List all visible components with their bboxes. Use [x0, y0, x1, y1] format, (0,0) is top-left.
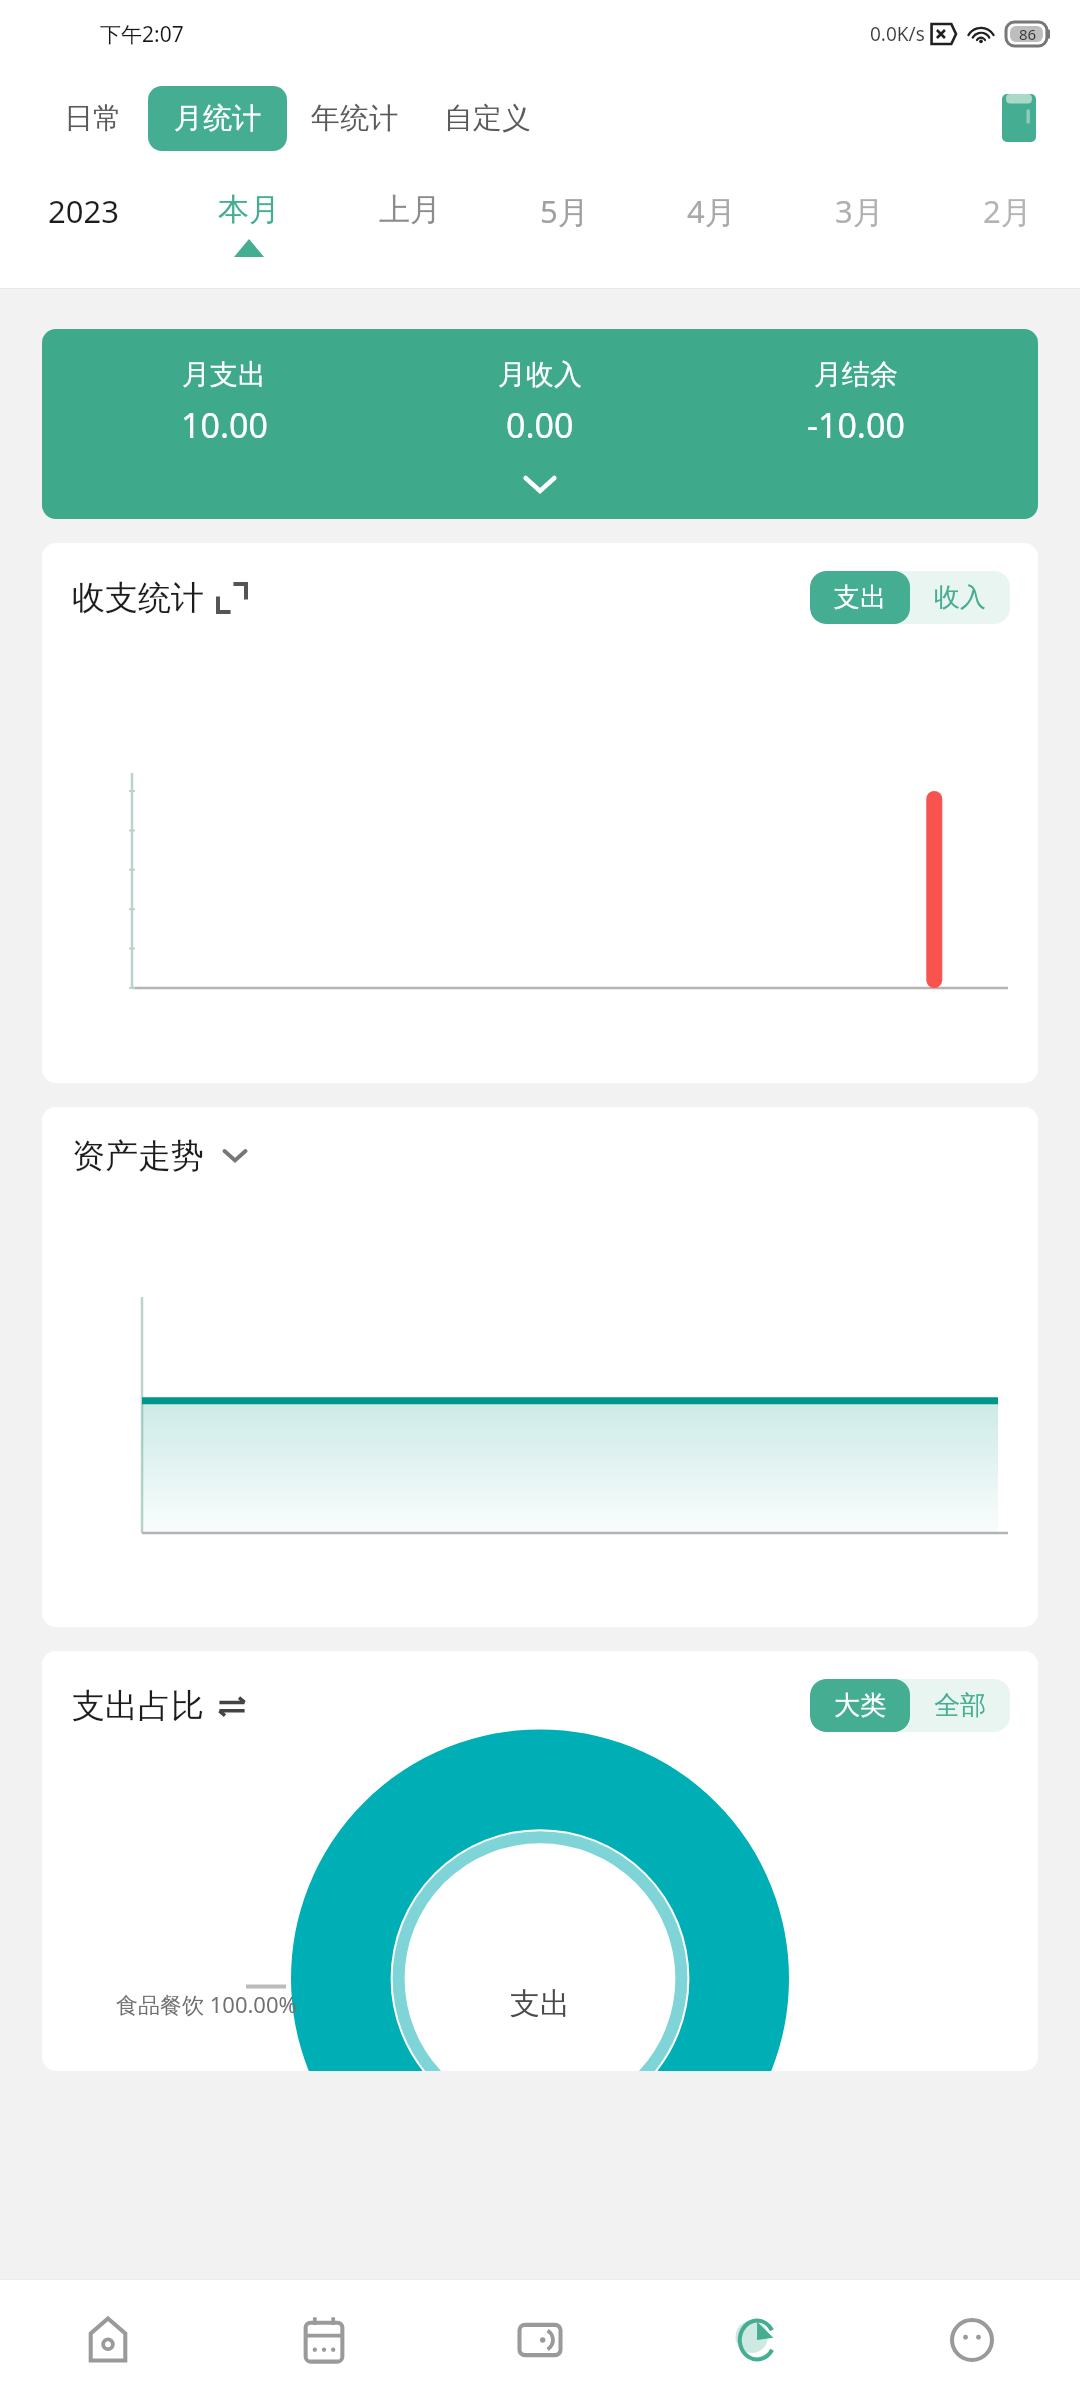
staticText: 资产走势 [72, 1135, 204, 1177]
staticText: 大类 [834, 1689, 886, 1722]
staticText: 下午2:07 [100, 20, 184, 49]
staticText: 上月 [379, 190, 441, 229]
button[interactable]: 3月 [827, 168, 892, 242]
staticText: 收入 [934, 581, 986, 614]
button[interactable]: Swap [218, 1694, 246, 1718]
staticText: 0.0K/s [870, 21, 925, 47]
staticText: 本月 [218, 190, 280, 229]
staticText: 支出占比 [72, 1685, 204, 1727]
button[interactable]: 2月 [975, 168, 1040, 242]
button[interactable]: 支出 [810, 571, 910, 624]
staticText: 全部 [934, 1689, 986, 1722]
staticText: 支出 [834, 581, 886, 614]
staticText: 2023 [48, 190, 119, 232]
staticText: 月结余 [814, 357, 898, 392]
button[interactable]: 4月 [679, 168, 744, 242]
staticText: 86 [1019, 24, 1037, 44]
button[interactable]: 日常 [50, 88, 136, 149]
staticText: -10.00 [807, 402, 905, 448]
button[interactable]: Wallet [432, 2280, 648, 2400]
button[interactable]: 月支出 [42, 329, 1038, 519]
button[interactable]: Statistics [648, 2280, 864, 2400]
button[interactable]: More [220, 1146, 250, 1166]
button[interactable]: 月统计 [148, 86, 287, 151]
button[interactable]: 上月 [371, 168, 449, 239]
button[interactable]: 5月 [532, 168, 597, 242]
staticText: 10.00 [181, 402, 268, 448]
staticText: 收支统计 [72, 577, 204, 619]
button[interactable]: 年统计 [301, 88, 408, 149]
staticText: 0.00 [506, 402, 574, 448]
button[interactable]: Home [0, 2280, 216, 2400]
staticText: 5月 [540, 190, 589, 232]
staticText: 食品餐饮 100.00% [116, 1989, 297, 2019]
button[interactable]: Book [1002, 94, 1036, 142]
button[interactable]: More [864, 2280, 1080, 2400]
staticText: 3月 [835, 190, 884, 232]
staticText: 月统计 [174, 100, 261, 137]
button[interactable]: 2023 [40, 168, 127, 242]
staticText: 月支出 [182, 357, 266, 392]
button[interactable]: 本月 [210, 168, 288, 257]
button[interactable]: Expand [218, 584, 246, 612]
button[interactable]: 全部 [910, 1679, 1010, 1732]
staticText: 4月 [687, 190, 736, 232]
button[interactable]: 自定义 [434, 88, 541, 149]
staticText: 2月 [983, 190, 1032, 232]
button[interactable]: Calendar [216, 2280, 432, 2400]
staticText: 支出 [510, 1985, 570, 2023]
button[interactable]: 收入 [910, 571, 1010, 624]
staticText: 月收入 [498, 357, 582, 392]
button[interactable]: 大类 [810, 1679, 910, 1732]
